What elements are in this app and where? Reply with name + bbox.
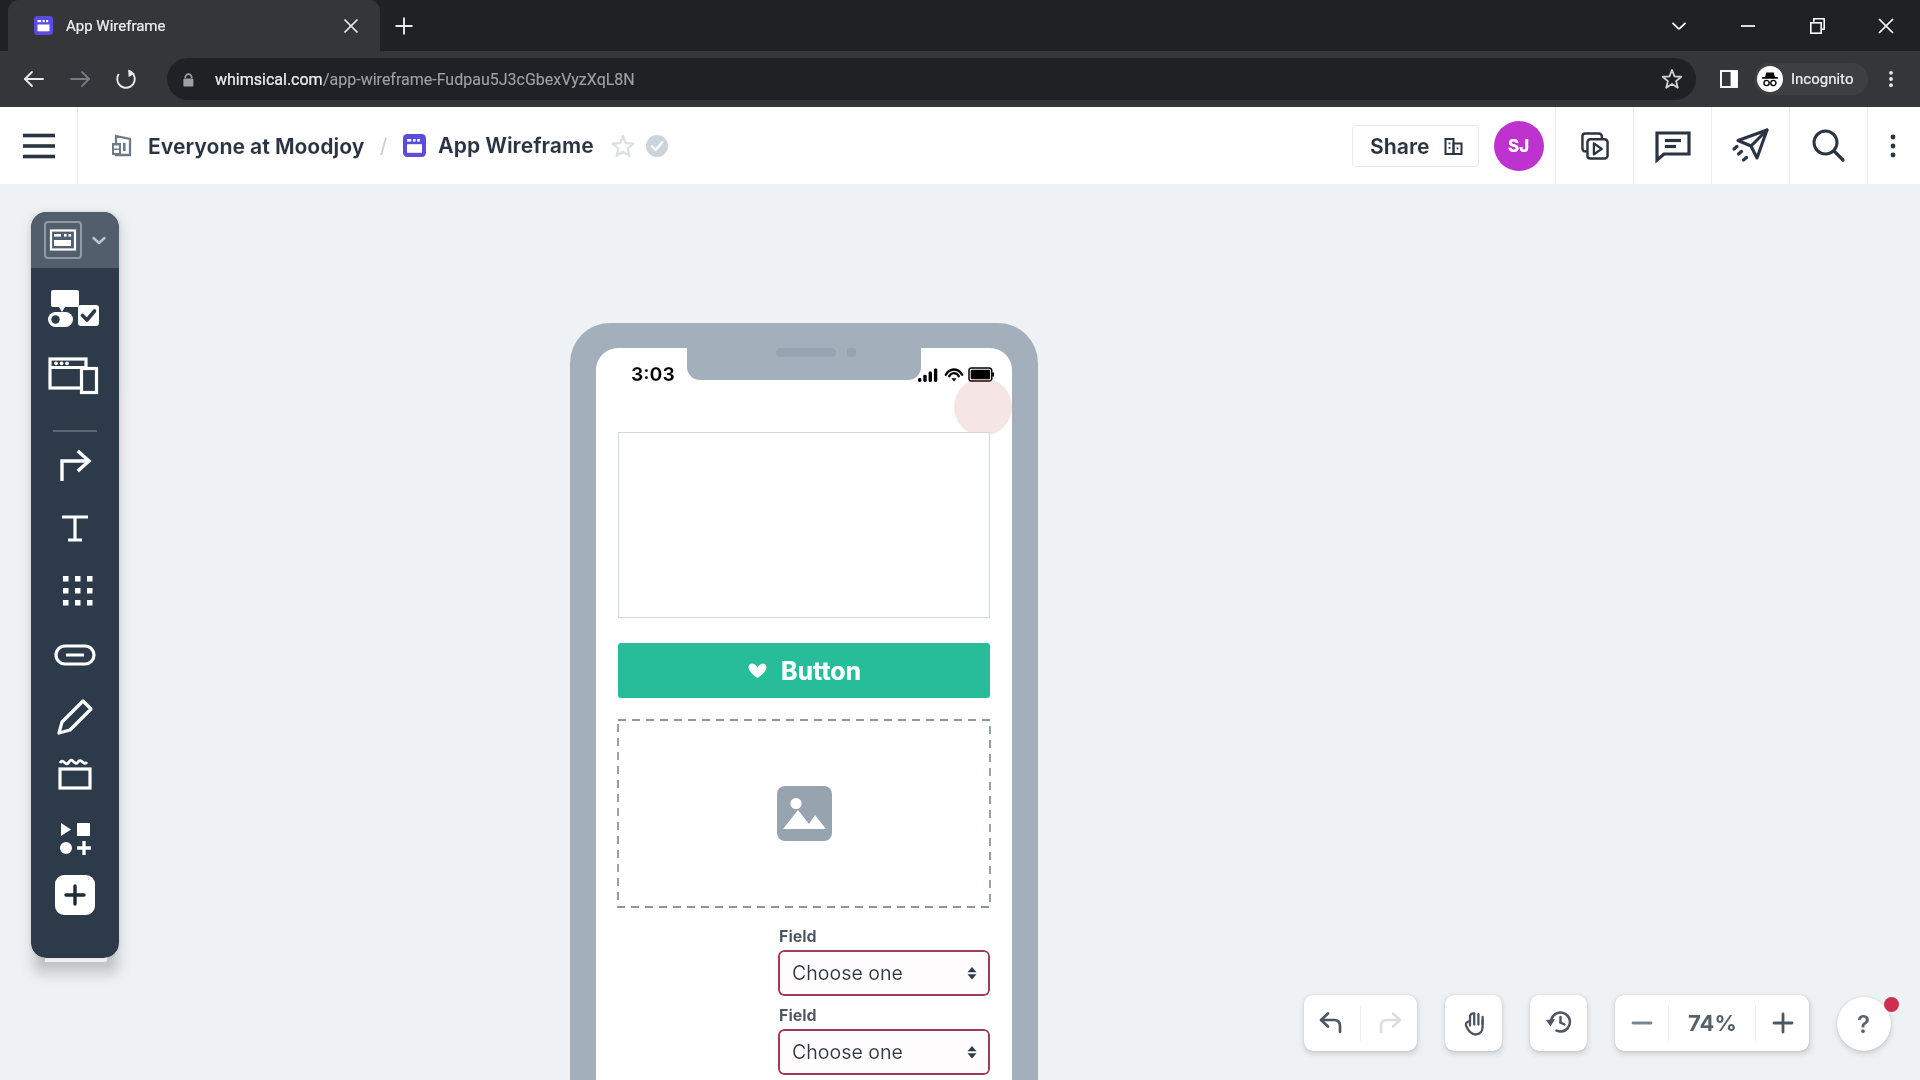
button[interactable]: Saved <box>642 131 672 161</box>
button[interactable]: Search tabs <box>1644 0 1713 51</box>
button[interactable]: Side panel <box>1706 56 1752 102</box>
button[interactable]: Add <box>55 875 95 915</box>
button[interactable]: Shapes <box>31 809 119 865</box>
button[interactable]: Components <box>31 288 119 344</box>
staticText: SJ <box>1508 136 1530 157</box>
staticText: / <box>380 134 388 158</box>
button[interactable]: Close tab <box>336 11 366 41</box>
staticText: 74% <box>1688 1010 1737 1037</box>
staticText: Everyone at Moodjoy <box>148 134 365 159</box>
button[interactable]: Close window <box>1851 0 1920 51</box>
staticText: Field <box>779 1005 817 1024</box>
staticText: Choose one <box>792 961 903 985</box>
staticText: Incognito <box>1791 70 1854 88</box>
button[interactable]: Link <box>31 627 119 683</box>
button[interactable]: Undo <box>1304 995 1360 1051</box>
button[interactable]: SJ <box>1494 121 1544 171</box>
staticText: whimsical.com <box>215 70 323 89</box>
button[interactable]: Version history <box>1530 995 1587 1051</box>
button[interactable]: App Wireframe <box>8 0 380 51</box>
staticText: Button <box>781 656 862 686</box>
button[interactable]: Text <box>31 500 119 556</box>
button[interactable]: Incognito <box>1754 63 1868 95</box>
button[interactable]: Connector <box>31 437 119 493</box>
button[interactable] <box>618 720 990 907</box>
button[interactable]: Zoom in <box>1756 995 1809 1051</box>
staticText: App Wireframe <box>66 17 166 35</box>
button[interactable]: Comments <box>1634 107 1711 184</box>
staticText: Choose one <box>792 1040 903 1064</box>
button[interactable]: Button <box>618 643 990 698</box>
button[interactable]: Choose one <box>792 1029 978 1075</box>
button[interactable]: Wireframe tool <box>44 221 82 259</box>
button[interactable]: More <box>1868 107 1918 184</box>
button[interactable]: Zoom out <box>1615 995 1668 1051</box>
button[interactable]: Choose one <box>792 950 978 996</box>
button[interactable]: Maximize <box>1782 0 1851 51</box>
button[interactable]: Draw <box>31 689 119 745</box>
button[interactable]: Sticky <box>31 745 119 801</box>
button[interactable]: Favourite <box>608 131 638 161</box>
button[interactable]: Everyone at Moodjoy <box>110 133 365 159</box>
button[interactable]: More options <box>1868 56 1914 102</box>
button[interactable]: Redo <box>1361 995 1417 1051</box>
button[interactable]: Pan <box>1445 995 1502 1051</box>
button[interactable]: Screens <box>31 355 119 411</box>
staticText: /app-wireframe-Fudpau5J3cGbexVyzXqL8N <box>323 70 635 89</box>
button[interactable]: 74% <box>1669 995 1755 1051</box>
staticText: App Wireframe <box>438 133 594 158</box>
button[interactable]: whimsical.com <box>167 58 1652 100</box>
button[interactable]: Help <box>1837 997 1891 1051</box>
staticText: Share <box>1370 134 1430 159</box>
button[interactable]: Present <box>1556 107 1633 184</box>
button[interactable]: Menu <box>0 107 77 184</box>
button[interactable]: Grid <box>31 560 119 616</box>
button[interactable]: Share <box>1370 125 1465 167</box>
button[interactable]: Minimize <box>1713 0 1782 51</box>
button[interactable]: Forward <box>57 56 103 102</box>
staticText: ? <box>1857 1010 1871 1039</box>
staticText: Field <box>779 926 817 945</box>
button[interactable]: Bookmark <box>1652 59 1692 99</box>
staticText: 3:03 <box>631 363 675 386</box>
button[interactable]: Reload <box>103 56 149 102</box>
button[interactable] <box>618 432 990 618</box>
button[interactable]: Search <box>1790 107 1867 184</box>
button[interactable]: Send <box>1712 107 1789 184</box>
button[interactable]: App Wireframe <box>403 133 594 158</box>
button[interactable]: Back <box>11 56 57 102</box>
button[interactable]: New tab <box>388 10 420 42</box>
